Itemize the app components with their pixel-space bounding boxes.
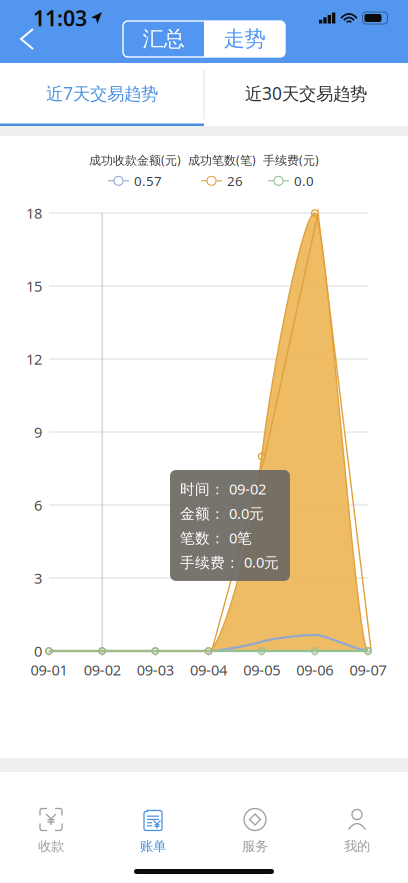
staticText: 0.0 — [294, 172, 314, 190]
button[interactable]: 服务 — [204, 808, 306, 858]
staticText: 3 — [34, 568, 42, 588]
staticText: 成功笔数(笔) — [188, 152, 256, 168]
staticText: 金额： 0.0元 — [180, 503, 264, 523]
staticText: 9 — [34, 422, 42, 442]
staticText: 11:03 — [33, 4, 87, 32]
button[interactable]: 收款 — [0, 808, 102, 858]
staticText: 近7天交易趋势 — [46, 82, 158, 105]
staticText: 近30天交易趋势 — [245, 82, 367, 105]
staticText: 15 — [26, 276, 42, 296]
button[interactable]: 近30天交易趋势 — [204, 63, 408, 126]
staticText: 09-05 — [243, 660, 280, 679]
staticText: 成功收款金额(元) — [89, 152, 181, 168]
staticText: 手续费： 0.0元 — [180, 552, 279, 572]
button[interactable]: 账单 — [102, 808, 204, 858]
staticText: 服务 — [242, 838, 268, 854]
staticText: 6 — [34, 495, 42, 515]
staticText: 12 — [26, 349, 42, 369]
staticText: 汇总 — [142, 26, 184, 52]
staticText: 0 — [34, 641, 42, 661]
button[interactable]: Back — [0, 20, 46, 58]
staticText: 26 — [227, 172, 243, 190]
staticText: 手续费(元) — [263, 152, 319, 168]
button[interactable]: 走势 — [204, 21, 285, 57]
staticText: 0.57 — [134, 172, 162, 190]
staticText: 笔数： 0笔 — [180, 528, 252, 547]
staticText: 09-07 — [349, 660, 386, 679]
staticText: 时间： 09-02 — [180, 479, 266, 498]
staticText: 09-06 — [296, 660, 333, 679]
staticText: 收款 — [38, 838, 64, 854]
button[interactable]: 汇总 — [123, 21, 204, 57]
button[interactable]: 近7天交易趋势 — [0, 63, 204, 126]
button[interactable]: 我的 — [306, 808, 408, 858]
staticText: 18 — [26, 203, 42, 223]
staticText: 我的 — [344, 838, 370, 854]
staticText: 09-02 — [84, 660, 121, 679]
staticText: 09-03 — [137, 660, 174, 679]
staticText: 账单 — [140, 838, 166, 854]
staticText: 走势 — [223, 26, 265, 52]
staticText: 09-04 — [190, 660, 227, 679]
staticText: 09-01 — [30, 660, 67, 679]
